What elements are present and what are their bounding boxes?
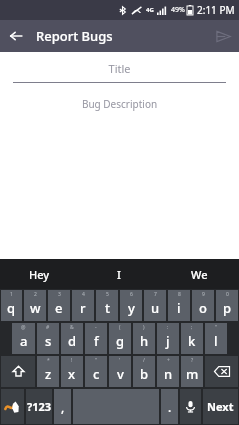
staticText: t [105, 299, 110, 317]
staticText: # [46, 324, 50, 331]
button[interactable]: @ [12, 323, 35, 354]
button[interactable]: / [133, 356, 155, 387]
staticText: m [186, 365, 199, 383]
button[interactable]: & [61, 323, 83, 354]
button[interactable]: 5 [96, 290, 118, 321]
staticText: @ [21, 324, 26, 331]
staticText: We [191, 267, 208, 282]
staticText: v [117, 365, 124, 383]
staticText: 6 [130, 291, 133, 298]
staticText: o [199, 299, 207, 317]
staticText: ' [119, 357, 121, 364]
button[interactable]: Send [207, 20, 239, 52]
staticText: ! [71, 357, 73, 364]
button[interactable]: Voice input [180, 389, 201, 424]
button[interactable]: Shift [1, 356, 35, 387]
button[interactable]: Backspace [205, 356, 238, 387]
staticText: / [143, 357, 145, 364]
staticText: Next [207, 399, 234, 414]
staticText: 4G [146, 6, 154, 14]
staticText: 4 [82, 291, 85, 298]
staticText: 8 [178, 291, 181, 298]
staticText: c [93, 365, 100, 383]
staticText: & [70, 324, 74, 331]
button[interactable]: " [85, 356, 107, 387]
button[interactable]: 7 [144, 290, 166, 321]
staticText: ( [119, 324, 121, 331]
button[interactable]: " [205, 323, 227, 354]
staticText: " [215, 324, 218, 331]
button[interactable]: 0 [216, 290, 238, 321]
staticText: h [140, 332, 149, 350]
staticText: ; [191, 324, 193, 331]
staticText: 2:11 PM [197, 3, 235, 17]
staticText: I [117, 267, 121, 282]
button[interactable]: Hey [0, 259, 79, 289]
staticText: g [116, 332, 125, 350]
staticText: a [20, 332, 28, 350]
button[interactable]: 2 [24, 290, 46, 321]
staticText: f [94, 332, 99, 350]
staticText: r [80, 299, 86, 317]
button[interactable]: Next [203, 389, 238, 424]
staticText: n [164, 365, 173, 383]
staticText: 5 [106, 291, 109, 298]
button[interactable]: # [37, 323, 59, 354]
staticText: i [177, 299, 181, 317]
button[interactable]: 1 [1, 290, 22, 321]
staticText: k [188, 332, 196, 350]
button[interactable]: Back [0, 20, 32, 52]
button[interactable]: 3 [48, 290, 70, 321]
button[interactable]: . [161, 389, 178, 424]
staticText: s [45, 332, 52, 350]
button[interactable]: 6 [120, 290, 142, 321]
staticText: Bug Description [13, 97, 226, 111]
button[interactable]: ! [61, 356, 83, 387]
staticText: l [214, 332, 218, 350]
staticText: : [167, 324, 169, 331]
button[interactable]: ?123 [26, 389, 52, 424]
staticText: ) [143, 324, 145, 331]
staticText: 2 [34, 291, 37, 298]
button[interactable]: 9 [192, 290, 214, 321]
staticText: 3 [58, 291, 61, 298]
button[interactable]: I [79, 259, 159, 289]
staticText: z [45, 365, 52, 383]
staticText: Title [13, 61, 226, 76]
button[interactable]: + [157, 356, 179, 387]
staticText: ?123 [27, 399, 52, 414]
staticText: 1 [10, 291, 13, 298]
staticText: ? [191, 357, 194, 364]
staticText: . [168, 399, 172, 415]
staticText: 0 [226, 291, 229, 298]
staticText: Hey [29, 267, 50, 282]
staticText: q [7, 299, 16, 317]
button[interactable]: Gesture typing [1, 389, 24, 424]
button[interactable]: * [37, 356, 59, 387]
button[interactable]: - [85, 323, 107, 354]
staticText: + [167, 357, 170, 364]
button[interactable]: ? [181, 356, 203, 387]
staticText: j [166, 332, 170, 350]
staticText: " [95, 357, 98, 364]
button[interactable]: , [54, 389, 71, 424]
staticText: Report Bugs [36, 27, 113, 45]
button[interactable]: 4 [72, 290, 94, 321]
staticText: w [30, 299, 41, 317]
button[interactable]: We [159, 259, 239, 289]
staticText: * [47, 357, 50, 364]
staticText: p [223, 299, 232, 317]
button[interactable]: ' [109, 356, 131, 387]
staticText: u [151, 299, 160, 317]
button[interactable]: 8 [168, 290, 190, 321]
staticText: 49% [171, 5, 185, 15]
button[interactable]: ( [109, 323, 131, 354]
staticText: , [61, 399, 65, 415]
staticText: e [55, 299, 63, 317]
button[interactable]: ; [181, 323, 203, 354]
staticText: y [128, 299, 135, 317]
button[interactable]: ) [133, 323, 155, 354]
staticText: x [68, 365, 76, 383]
button[interactable]: : [157, 323, 179, 354]
